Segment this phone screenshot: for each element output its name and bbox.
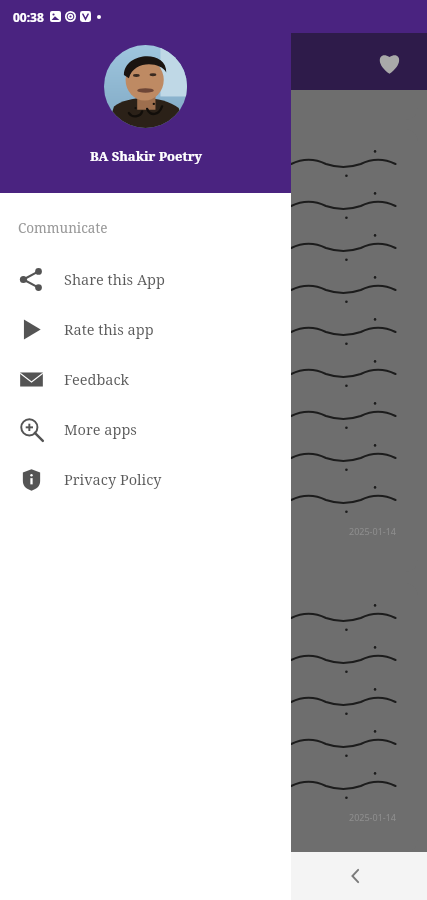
button[interactable]: More apps bbox=[0, 404, 291, 454]
button[interactable]: Save bbox=[84, 98, 129, 117]
staticText: Share this App bbox=[64, 269, 165, 289]
staticText: Privacy Policy bbox=[64, 469, 162, 489]
button[interactable]: Share this App bbox=[0, 254, 291, 304]
button[interactable]: Rate this app bbox=[0, 304, 291, 354]
staticText: Rate this app bbox=[64, 319, 154, 339]
button[interactable]: Privacy Policy bbox=[0, 454, 291, 504]
staticText: Feedback bbox=[64, 369, 130, 389]
staticText: More apps bbox=[64, 419, 137, 439]
staticText: 2025-01-14 bbox=[349, 811, 396, 823]
staticText: Communicate bbox=[18, 219, 108, 237]
staticText: BA Shakir Poetry bbox=[90, 147, 202, 165]
button[interactable]: Back bbox=[285, 852, 427, 900]
button[interactable]: Favourites bbox=[371, 44, 407, 80]
staticText: 00:38 bbox=[13, 9, 44, 25]
staticText: 2025-01-14 bbox=[349, 525, 396, 537]
staticText: Save bbox=[109, 102, 127, 113]
button[interactable]: Feedback bbox=[0, 354, 291, 404]
button[interactable]: 2025-01-14 bbox=[9, 129, 418, 572]
button[interactable]: 2025-01-14 bbox=[9, 583, 418, 852]
